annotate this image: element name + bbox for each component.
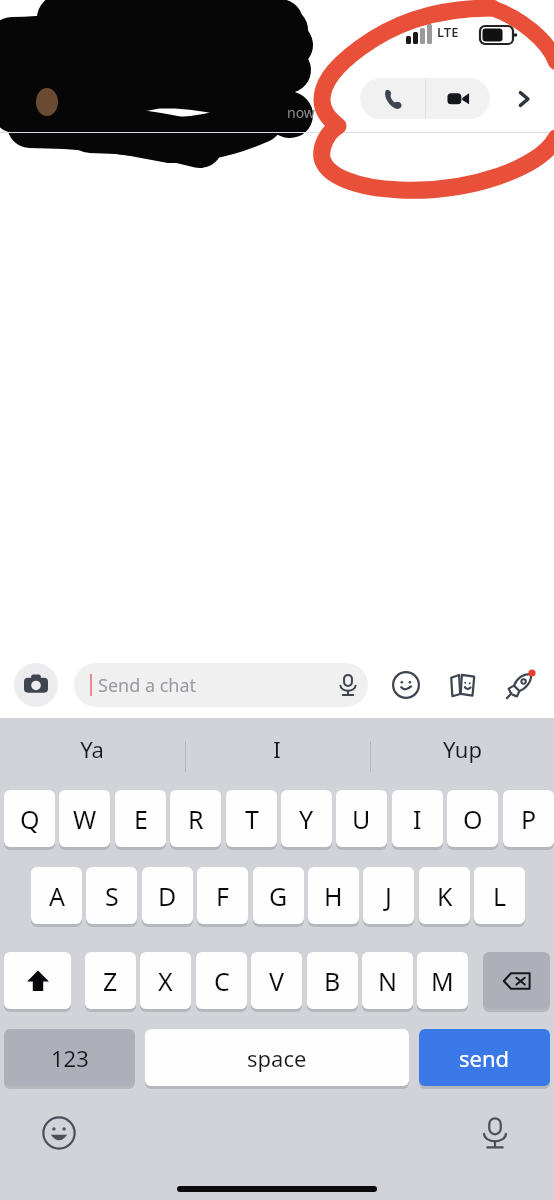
staticText: D bbox=[158, 879, 177, 913]
button[interactable]: 123 bbox=[4, 1029, 135, 1086]
button[interactable]: More bbox=[503, 78, 544, 119]
button[interactable]: F bbox=[197, 867, 248, 924]
button[interactable]: X bbox=[140, 952, 191, 1009]
staticText: space bbox=[247, 1043, 307, 1073]
staticText: Z bbox=[103, 964, 118, 998]
button[interactable]: U bbox=[336, 790, 387, 847]
button[interactable]: M bbox=[417, 952, 468, 1009]
staticText: L bbox=[493, 879, 507, 913]
button[interactable]: B bbox=[307, 952, 358, 1009]
staticText: F bbox=[216, 879, 229, 913]
staticText: K bbox=[437, 879, 453, 913]
button[interactable]: Send a chat bbox=[74, 663, 368, 707]
button[interactable]: I bbox=[392, 790, 443, 847]
staticText: M bbox=[431, 964, 454, 998]
button[interactable]: V bbox=[251, 952, 302, 1009]
staticText: J bbox=[385, 879, 392, 913]
button[interactable]: Camera bbox=[14, 663, 58, 707]
button[interactable]: D bbox=[142, 867, 193, 924]
button[interactable]: Emoji bbox=[386, 665, 426, 705]
button[interactable]: J bbox=[363, 867, 414, 924]
button[interactable]: Backspace bbox=[483, 952, 550, 1009]
staticText: G bbox=[269, 879, 288, 913]
staticText: 123 bbox=[51, 1043, 89, 1073]
staticText: E bbox=[134, 802, 148, 836]
staticText: V bbox=[269, 964, 285, 998]
staticText: I bbox=[273, 734, 281, 764]
button[interactable]: send bbox=[419, 1029, 550, 1086]
staticText: send bbox=[459, 1043, 510, 1073]
button[interactable]: L bbox=[474, 867, 525, 924]
staticText: B bbox=[324, 964, 341, 998]
staticText: U bbox=[352, 802, 371, 836]
staticText: W bbox=[73, 802, 97, 836]
button[interactable]: Voice call bbox=[360, 78, 425, 119]
button[interactable]: T bbox=[226, 790, 277, 847]
button[interactable]: Emoji keyboard bbox=[36, 1110, 82, 1156]
staticText: LTE bbox=[437, 23, 459, 41]
staticText: C bbox=[214, 964, 230, 998]
staticText: T bbox=[245, 802, 259, 836]
button[interactable]: H bbox=[308, 867, 359, 924]
staticText: Yup bbox=[443, 734, 482, 764]
button[interactable]: A bbox=[31, 867, 82, 924]
staticText: R bbox=[188, 802, 204, 836]
button[interactable]: G bbox=[253, 867, 304, 924]
button[interactable]: Dictation bbox=[472, 1110, 518, 1156]
button[interactable]: N bbox=[362, 952, 413, 1009]
button[interactable]: Games bbox=[500, 665, 540, 705]
staticText: Send a chat bbox=[98, 673, 328, 698]
button[interactable]: O bbox=[447, 790, 498, 847]
staticText: I bbox=[413, 802, 422, 836]
staticText: Ya bbox=[80, 734, 104, 764]
button[interactable]: Y bbox=[281, 790, 332, 847]
staticText: S bbox=[105, 879, 119, 913]
staticText: Y bbox=[299, 802, 314, 836]
staticText: now bbox=[287, 103, 315, 122]
button[interactable]: Z bbox=[85, 952, 136, 1009]
button[interactable] bbox=[4, 952, 71, 1009]
staticText: N bbox=[378, 964, 398, 998]
staticText: Q bbox=[20, 802, 40, 836]
button[interactable]: S bbox=[86, 867, 137, 924]
staticText: O bbox=[463, 802, 483, 836]
button[interactable]: W bbox=[59, 790, 110, 847]
button[interactable]: R bbox=[170, 790, 221, 847]
staticText: X bbox=[158, 964, 173, 998]
button[interactable]: P bbox=[503, 790, 554, 847]
button[interactable]: Video call bbox=[426, 78, 490, 119]
button[interactable]: Stickers bbox=[443, 665, 483, 705]
button[interactable]: K bbox=[419, 867, 470, 924]
button[interactable]: Q bbox=[4, 790, 55, 847]
staticText: P bbox=[521, 802, 537, 836]
button[interactable]: E bbox=[115, 790, 166, 847]
staticText: H bbox=[324, 879, 343, 913]
button[interactable]: space bbox=[145, 1029, 409, 1086]
button[interactable]: Yup bbox=[382, 722, 542, 776]
button[interactable]: I bbox=[197, 722, 357, 776]
button[interactable]: Ya bbox=[12, 722, 172, 776]
button[interactable]: C bbox=[196, 952, 247, 1009]
staticText: A bbox=[49, 879, 65, 913]
button[interactable]: Voice note bbox=[328, 665, 368, 705]
